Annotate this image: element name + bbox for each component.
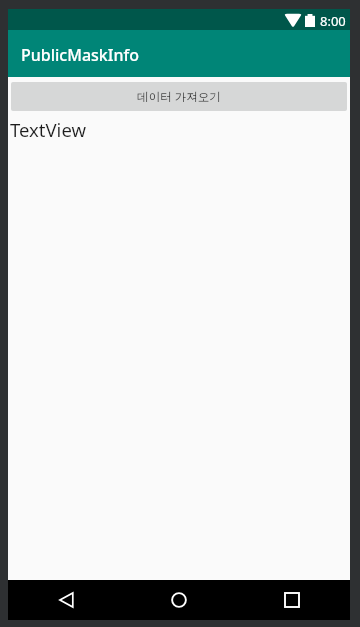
staticText: TextView <box>10 117 86 142</box>
staticText: 8:00 <box>320 12 346 30</box>
staticText: PublicMaskInfo <box>21 44 139 66</box>
button[interactable]: Back <box>8 580 122 620</box>
button[interactable]: Recents <box>236 580 350 620</box>
button[interactable]: Home <box>122 580 236 620</box>
button[interactable]: PublicMaskInfo <box>8 30 350 77</box>
button[interactable]: 데이터 가져오기 <box>11 82 347 111</box>
staticText: 데이터 가져오기 <box>137 89 221 105</box>
